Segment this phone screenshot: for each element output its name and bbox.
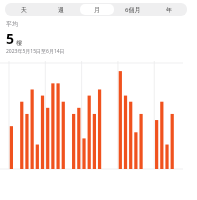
staticText: 週 bbox=[58, 6, 64, 14]
staticText: 樓 bbox=[16, 39, 22, 47]
staticText: 年 bbox=[166, 6, 172, 14]
staticText: 月 bbox=[94, 6, 100, 14]
button[interactable]: 年 bbox=[152, 4, 186, 15]
button[interactable]: 天 bbox=[6, 4, 41, 15]
staticText: 5 bbox=[6, 29, 15, 48]
button[interactable]: 週 bbox=[43, 4, 78, 15]
button[interactable]: 月 bbox=[80, 4, 114, 15]
button[interactable]: 6個月 bbox=[116, 4, 150, 15]
staticText: 2023年5月15日至6月14日 bbox=[6, 48, 65, 55]
staticText: 平均 bbox=[6, 20, 18, 28]
staticText: 天 bbox=[21, 6, 27, 14]
staticText: 6個月 bbox=[125, 6, 141, 14]
